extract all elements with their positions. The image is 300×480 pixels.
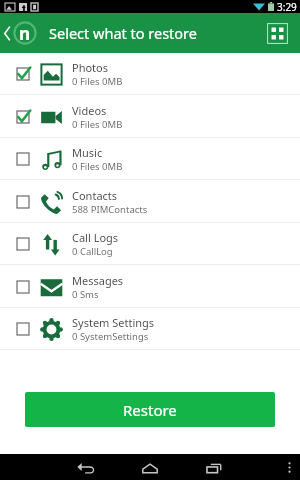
staticText: n	[19, 22, 31, 45]
button[interactable]: Back	[0, 13, 13, 53]
button[interactable]: Messages	[0, 265, 300, 308]
staticText: 0 SystemSettings	[72, 330, 149, 343]
button[interactable]: Music	[0, 138, 300, 180]
button[interactable]: More options	[278, 454, 300, 480]
staticText: 588 PIMContacts	[72, 203, 148, 216]
button[interactable]: Videos	[0, 95, 300, 138]
staticText: Contacts	[72, 188, 118, 203]
staticText: Photos	[72, 60, 109, 75]
staticText: Call Logs	[72, 230, 119, 245]
button[interactable]: Apps	[258, 14, 296, 52]
staticText: System Settings	[72, 315, 155, 330]
staticText: 0 Sms	[72, 288, 99, 301]
staticText: 0 Files 0MB	[72, 75, 123, 88]
staticText: Videos	[72, 103, 107, 118]
button[interactable]: Home	[128, 454, 172, 480]
staticText: 0 Files 0MB	[72, 118, 123, 131]
staticText: 0 Files 0MB	[72, 160, 123, 173]
staticText: Select what to restore	[49, 23, 198, 43]
staticText: 0 CallLog	[72, 245, 113, 258]
button[interactable]: Restore	[25, 392, 275, 427]
button[interactable]: Back	[64, 454, 108, 480]
staticText: Messages	[72, 273, 124, 288]
staticText: Music	[72, 145, 103, 160]
button[interactable]: Call Logs	[0, 223, 300, 265]
button[interactable]: Contacts	[0, 180, 300, 223]
button[interactable]: System Settings	[0, 308, 300, 350]
staticText: 3:29	[277, 0, 297, 13]
button[interactable]: Recents	[192, 454, 236, 480]
button[interactable]: Photos	[0, 53, 300, 95]
staticText: Restore	[123, 400, 177, 420]
